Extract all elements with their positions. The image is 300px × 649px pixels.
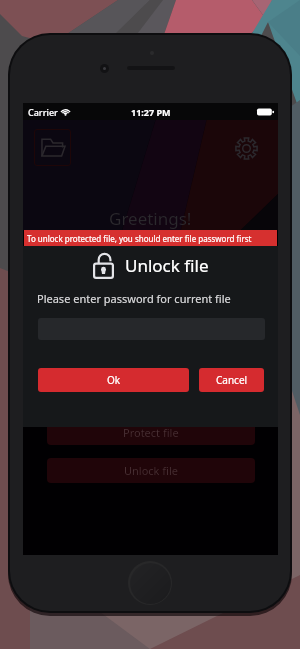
staticText: Carrier [28,106,58,118]
staticText: To unlock protected file, you should ent… [27,233,252,244]
staticText: 11:27 PM [131,106,171,118]
staticText: Unlock file [124,463,179,478]
staticText: Ok [107,373,121,387]
staticText: Please enter password for current file [37,291,231,306]
button[interactable]: Open file [34,129,71,166]
staticText: Unlock file [125,254,209,277]
button[interactable]: Ok [38,368,189,392]
button[interactable]: Protect file [47,420,255,445]
staticText: Protect file [123,425,179,440]
staticText: Cancel [216,373,248,387]
button[interactable]: Cancel [199,368,264,392]
button[interactable]: Unlock file [47,458,255,483]
staticText: Greetings! [109,207,192,230]
button[interactable]: Settings [231,133,262,164]
